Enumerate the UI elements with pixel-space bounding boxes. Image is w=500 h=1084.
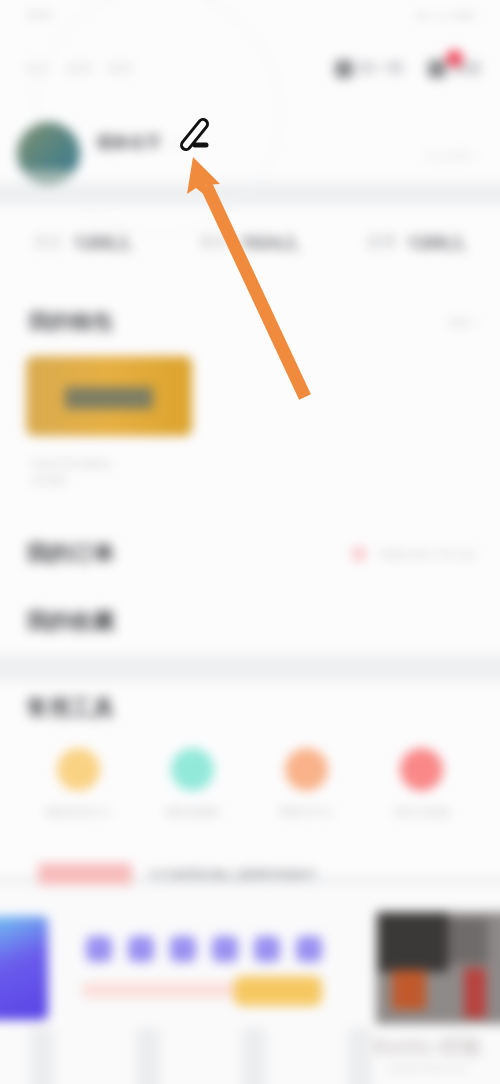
- button[interactable]: Scan: [335, 59, 404, 78]
- button[interactable]: 我的优惠券: [135, 748, 249, 819]
- button[interactable]: 意见与反馈: [364, 748, 479, 819]
- staticText: 1288人: [73, 230, 133, 255]
- button[interactable]: Messages: [428, 59, 482, 78]
- button[interactable]: 帮助与中心: [249, 748, 364, 819]
- staticText: Baidu 经验: [374, 1032, 482, 1061]
- button[interactable]: 我的活动中心: [21, 748, 135, 819]
- other: Edit profile: [0, 0, 500, 1084]
- staticText: 1024人: [240, 230, 300, 255]
- button[interactable]: 关注: [0, 218, 166, 266]
- staticText: 扫一扫: [359, 59, 404, 78]
- staticText: 消息: [452, 59, 482, 78]
- button[interactable]: 获赞: [333, 218, 500, 266]
- button[interactable]: 今日推荐好物上新限时抢购中: [0, 854, 500, 894]
- button[interactable]: 粉丝: [166, 218, 333, 266]
- staticText: 获赞: [367, 233, 397, 252]
- staticText: 粉丝: [200, 233, 230, 252]
- staticText: —: [173, 135, 186, 151]
- staticText: 我的收藏: [26, 608, 114, 636]
- button[interactable]: 我的订单: [0, 532, 500, 576]
- staticText: 今日推荐好物上新限时抢购中: [148, 866, 317, 882]
- staticText: 1288人: [407, 230, 467, 255]
- staticText: 我的钱包: [28, 309, 112, 335]
- button[interactable]: 我的收藏: [0, 600, 500, 644]
- button[interactable]: 昵称名字: [0, 121, 500, 185]
- staticText: 昵称名字: [97, 133, 161, 153]
- staticText: 常用工具: [26, 695, 114, 723]
- button[interactable]: [26, 356, 192, 436]
- staticText: 我的订单: [26, 540, 114, 568]
